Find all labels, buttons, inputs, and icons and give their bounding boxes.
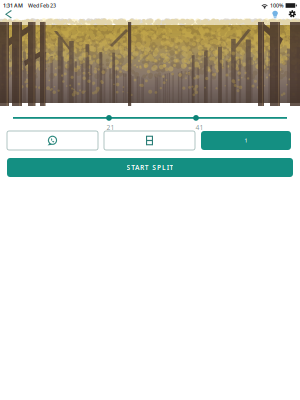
staticText: 41 <box>195 123 203 132</box>
staticText: 21 <box>106 123 114 132</box>
button[interactable]: Torch <box>267 10 284 25</box>
staticText: 100% <box>270 2 284 9</box>
staticText: Wed Feb 23 <box>28 2 56 9</box>
button[interactable]: Share to WhatsApp <box>7 131 98 150</box>
staticText: START SPLIT <box>126 163 173 172</box>
button[interactable]: 1 <box>201 131 291 150</box>
staticText: 1 <box>244 137 247 144</box>
button[interactable]: START SPLIT <box>7 158 293 177</box>
button[interactable]: Back <box>0 10 18 25</box>
button[interactable]: Settings <box>284 10 300 25</box>
button[interactable]: Split layout <box>104 131 195 150</box>
staticText: 1:31 AM <box>3 2 23 9</box>
